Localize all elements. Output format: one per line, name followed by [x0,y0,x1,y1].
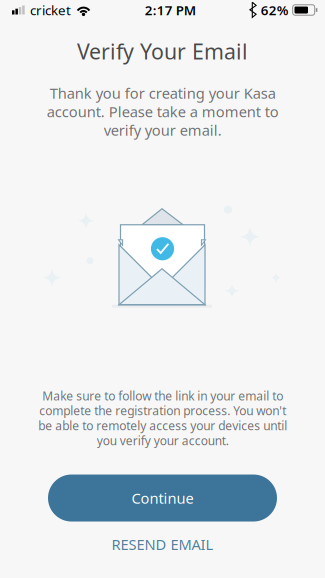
staticText: Verify Your Email [77,37,248,65]
button[interactable]: Continue [48,474,277,521]
staticText: 2:17 PM [145,1,196,19]
staticText: Continue [131,488,193,508]
staticText: 62% [261,1,289,19]
staticText: cricket [30,1,71,19]
staticText: Make sure to follow the link in your ema… [38,388,287,448]
button[interactable]: RESEND EMAIL [87,527,237,561]
staticText: Thank you for creating your Kasa account… [46,83,278,140]
staticText: RESEND EMAIL [111,534,213,554]
